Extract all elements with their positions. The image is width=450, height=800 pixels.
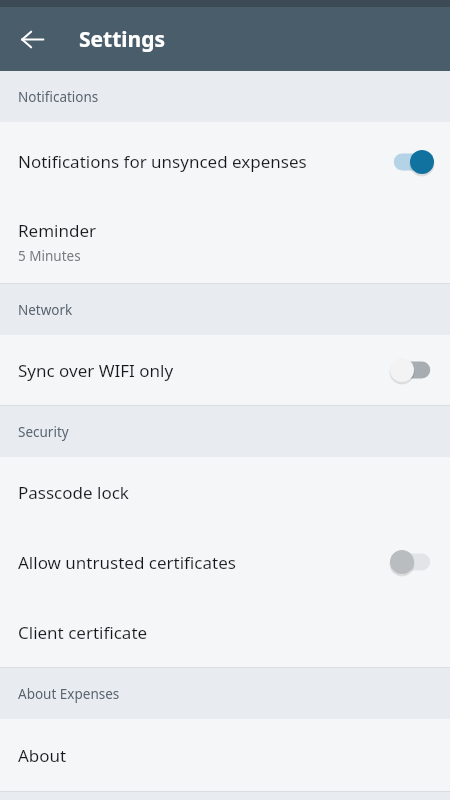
button[interactable]: Client certificate xyxy=(0,597,450,667)
staticText: About xyxy=(18,744,67,767)
staticText: Sync over WIFI only xyxy=(18,359,174,382)
button[interactable]: Notifications for unsynced expenses xyxy=(0,122,450,201)
staticText: Passcode lock xyxy=(18,481,129,504)
button[interactable]: About xyxy=(0,719,450,791)
staticText: Security xyxy=(18,423,69,441)
staticText: About Expenses xyxy=(18,685,120,703)
staticText: 5 Minutes xyxy=(18,247,81,265)
staticText: Client certificate xyxy=(18,621,148,644)
button[interactable]: Reminder xyxy=(0,201,450,283)
button[interactable]: Allow untrusted certificates xyxy=(0,527,450,597)
staticText: Settings xyxy=(79,25,166,54)
button[interactable]: Passcode lock xyxy=(0,457,450,527)
button[interactable]: Notifications for unsynced expenses togg… xyxy=(388,147,436,177)
button[interactable]: Back xyxy=(12,19,52,59)
staticText: Reminder xyxy=(18,219,97,242)
button[interactable]: Allow untrusted certificates toggle xyxy=(388,547,436,577)
staticText: Allow untrusted certificates xyxy=(18,551,236,574)
button[interactable]: Sync over WIFI only toggle xyxy=(388,355,436,385)
button[interactable]: Sync over WIFI only xyxy=(0,335,450,405)
staticText: Network xyxy=(18,301,73,319)
staticText: Notifications for unsynced expenses xyxy=(18,150,307,173)
staticText: Notifications xyxy=(18,88,99,106)
